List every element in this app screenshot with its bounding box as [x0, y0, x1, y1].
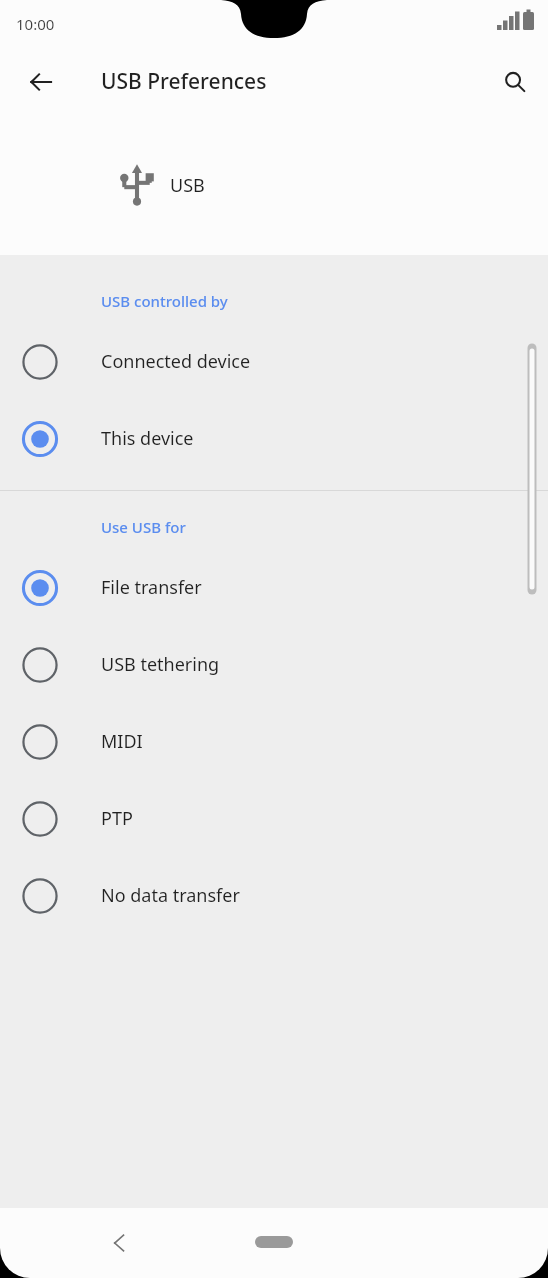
button[interactable]: No data transfer: [0, 857, 548, 934]
staticText: 10:00: [16, 14, 55, 34]
button[interactable]: Back: [96, 1219, 144, 1267]
staticText: MIDI: [101, 729, 143, 754]
button[interactable]: Connected device: [0, 323, 548, 400]
button[interactable]: Back: [17, 58, 65, 106]
staticText: USB: [170, 173, 205, 198]
staticText: No data transfer: [101, 883, 240, 908]
button[interactable]: Home: [250, 1227, 298, 1257]
button[interactable]: MIDI: [0, 703, 548, 780]
button[interactable]: Search: [491, 58, 539, 106]
staticText: Use USB for: [101, 517, 186, 537]
staticText: This device: [101, 426, 194, 451]
button[interactable]: File transfer: [0, 549, 548, 626]
staticText: Connected device: [101, 349, 251, 374]
staticText: USB controlled by: [101, 291, 228, 311]
button[interactable]: This device: [0, 400, 548, 477]
staticText: PTP: [101, 806, 133, 831]
staticText: USB tethering: [101, 652, 220, 677]
staticText: USB Preferences: [101, 67, 267, 96]
button[interactable]: PTP: [0, 780, 548, 857]
staticText: File transfer: [101, 575, 202, 600]
button[interactable]: USB tethering: [0, 626, 548, 703]
